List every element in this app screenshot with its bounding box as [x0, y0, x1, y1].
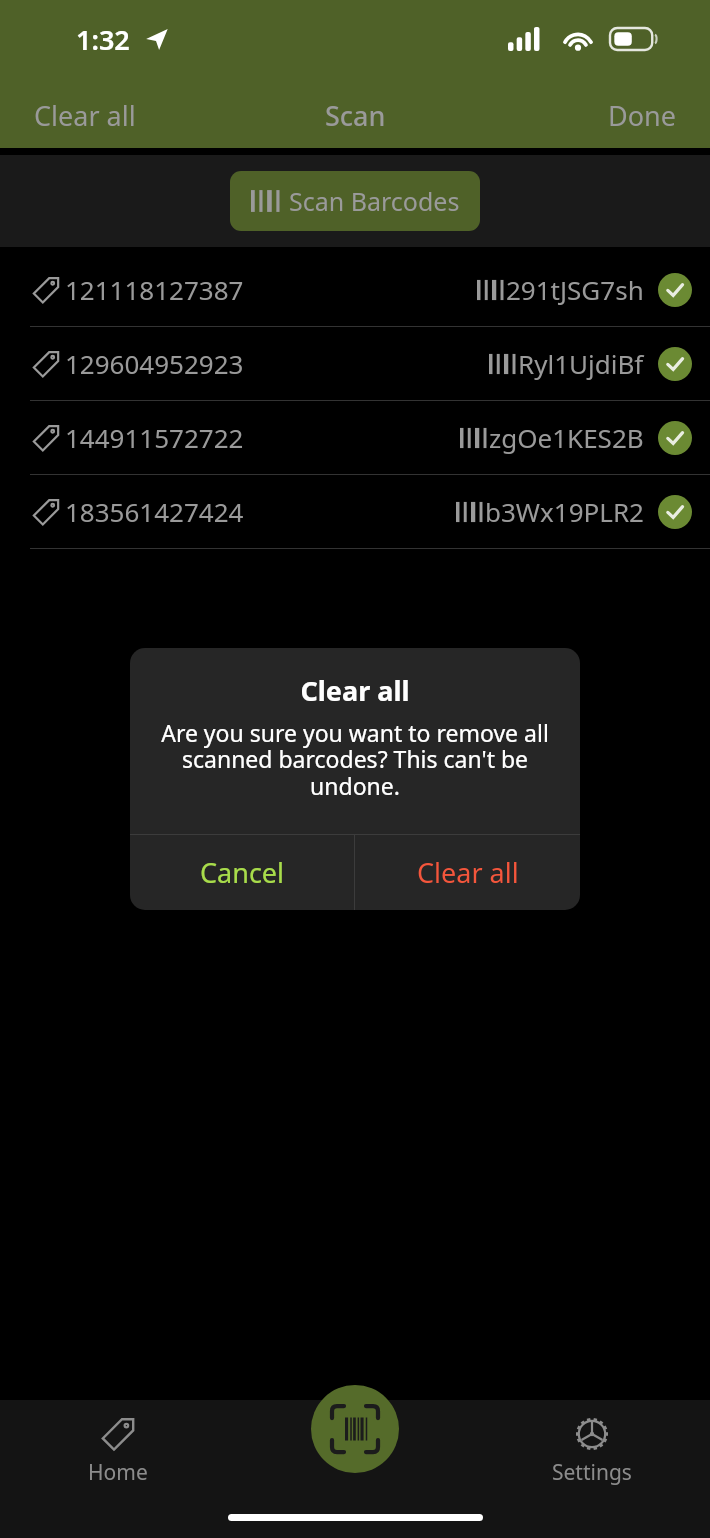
staticText: Clear all: [130, 672, 580, 709]
button[interactable]: Done: [584, 87, 700, 144]
staticText: 1:32: [76, 21, 130, 58]
button[interactable]: 144911572722: [0, 401, 710, 474]
button[interactable]: 129604952923: [0, 327, 710, 400]
staticText: Done: [608, 97, 676, 134]
button[interactable]: Clear all: [10, 87, 160, 144]
staticText: 121118127387: [65, 272, 244, 307]
button[interactable]: Scan barcode: [311, 1385, 399, 1473]
button[interactable]: Cancel: [130, 835, 354, 910]
staticText: Clear all: [34, 97, 136, 134]
staticText: Clear all: [417, 854, 519, 891]
staticText: Are you sure you want to remove all scan…: [146, 717, 564, 802]
button[interactable]: Clear all: [355, 835, 580, 910]
staticText: 129604952923: [65, 346, 244, 381]
button[interactable]: Scan Barcodes: [230, 171, 480, 231]
staticText: zgOe1KES2B: [489, 420, 644, 455]
button[interactable]: Home: [0, 1400, 236, 1500]
staticText: 291tJSG7sh: [506, 272, 644, 307]
staticText: Ryl1UjdiBf: [518, 346, 644, 381]
staticText: Cancel: [200, 854, 285, 891]
button[interactable]: Settings: [473, 1400, 710, 1500]
button[interactable]: 121118127387: [0, 253, 710, 326]
staticText: Home: [88, 1458, 148, 1487]
staticText: 183561427424: [65, 494, 244, 529]
staticText: Scan: [325, 97, 386, 134]
staticText: Settings: [552, 1458, 632, 1487]
staticText: b3Wx19PLR2: [485, 494, 644, 529]
staticText: 144911572722: [65, 420, 244, 455]
button[interactable]: 183561427424: [0, 475, 710, 548]
staticText: Scan Barcodes: [289, 184, 460, 218]
